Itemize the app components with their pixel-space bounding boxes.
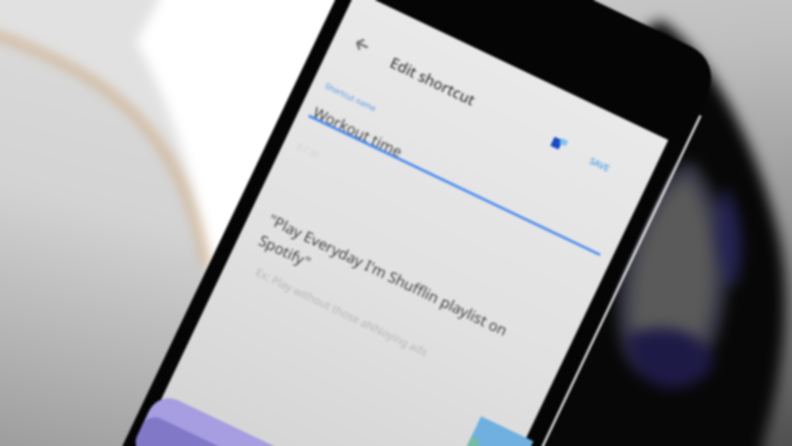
button[interactable]: Photo of a phone showing the Edit shortc…	[0, 0, 792, 446]
